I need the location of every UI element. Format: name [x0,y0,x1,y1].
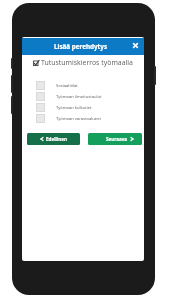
button[interactable]: Edellinen [27,133,80,145]
staticText: Lisää perehdytys [54,42,108,51]
button[interactable]: Tutustumiskierros työmaalla [33,58,136,67]
button[interactable]: Työmaan varastoalueet [36,114,136,123]
staticText: Työmaan ilmoitustaulut [56,94,102,100]
staticText: Edellinen [46,136,68,142]
button[interactable]: Työmaan ilmoitustaulut [36,92,136,101]
staticText: Sosiaalitilat [56,83,78,89]
staticText: Seuraava [106,136,128,142]
button[interactable]: Sosiaalitilat [36,81,136,90]
button[interactable]: Seuraava [88,133,142,145]
button[interactable]: Lisää perehdytys [22,38,144,55]
button[interactable]: Close [128,38,142,52]
staticText: Työmaan kulkutiet [56,105,92,111]
button[interactable]: Työmaan kulkutiet [36,103,136,112]
staticText: Tutustumiskierros työmaalla [41,58,133,67]
staticText: Työmaan varastoalueet [56,116,101,122]
